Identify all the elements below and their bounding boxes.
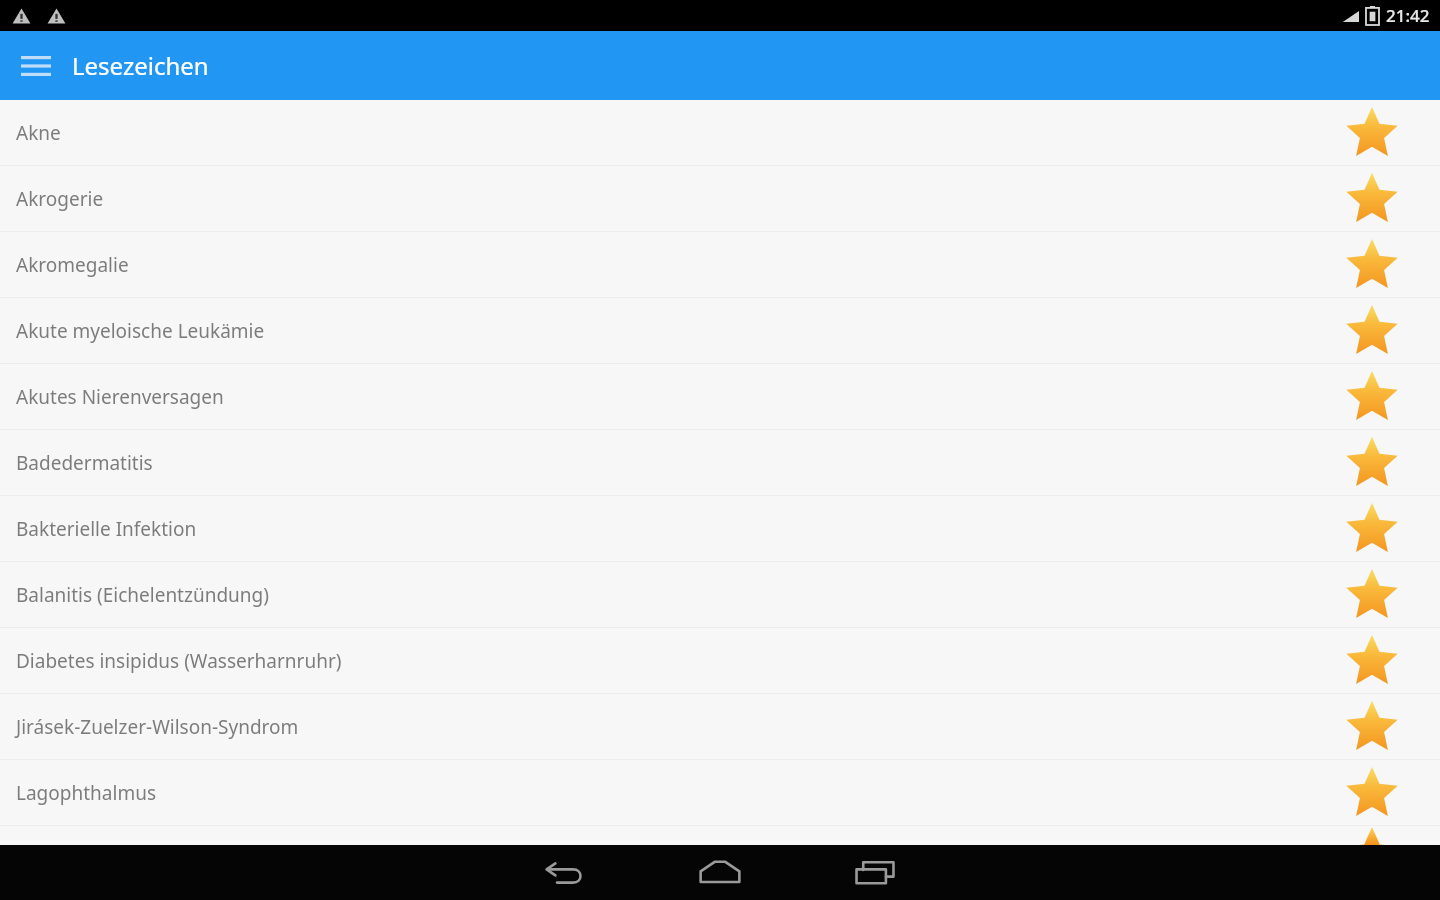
button[interactable]: Zurück [520, 845, 610, 900]
staticText: Bakterielle Infektion [16, 516, 197, 542]
button[interactable]: Akute myeloische Leukämie [0, 298, 1440, 363]
staticText: Diabetes insipidus (Wasserharnruhr) [16, 648, 342, 674]
other: Lesezeichen entfernen [1344, 765, 1400, 821]
button[interactable]: Startbildschirm [675, 845, 765, 900]
staticText: Akne [16, 120, 61, 146]
other: Lesezeichen entfernen [1344, 699, 1400, 755]
other: Lesezeichen entfernen [1344, 567, 1400, 623]
button[interactable] [0, 826, 1440, 845]
other: Lesezeichen entfernen [1344, 501, 1400, 557]
staticText: 21:42 [1386, 4, 1430, 27]
button[interactable]: Akromegalie [0, 232, 1440, 297]
button[interactable]: Lagophthalmus [0, 760, 1440, 825]
button[interactable]: Bakterielle Infektion [0, 496, 1440, 561]
staticText: Akute myeloische Leukämie [16, 318, 265, 344]
other: Lesezeichen entfernen [1344, 171, 1400, 227]
button[interactable]: Diabetes insipidus (Wasserharnruhr) [0, 628, 1440, 693]
button[interactable]: Badedermatitis [0, 430, 1440, 495]
other: Lesezeichen entfernen [1344, 237, 1400, 293]
staticText: Jirásek-Zuelzer-Wilson-Syndrom [16, 714, 299, 740]
staticText: Akrogerie [16, 186, 104, 212]
button[interactable]: Akutes Nierenversagen [0, 364, 1440, 429]
other: Lesezeichen entfernen [1344, 435, 1400, 491]
other: Lesezeichen entfernen [1344, 105, 1400, 161]
other: Lesezeichen entfernen [1344, 369, 1400, 425]
other: Lesezeichen entfernen [1344, 303, 1400, 359]
staticText: Lesezeichen [72, 49, 209, 82]
staticText: Akromegalie [16, 252, 129, 278]
staticText: Lagophthalmus [16, 780, 156, 806]
button[interactable]: Balanitis (Eichelentzündung) [0, 562, 1440, 627]
staticText: Akutes Nierenversagen [16, 384, 224, 410]
staticText: Badedermatitis [16, 450, 153, 476]
other: Lesezeichen entfernen [1344, 633, 1400, 689]
button[interactable]: Zuletzt verwendete Apps [830, 845, 920, 900]
staticText: Balanitis (Eichelentzündung) [16, 582, 269, 608]
button[interactable]: Akrogerie [0, 166, 1440, 231]
button[interactable]: Menü öffnen [12, 42, 60, 90]
button[interactable]: Akne [0, 100, 1440, 165]
button[interactable]: Jirásek-Zuelzer-Wilson-Syndrom [0, 694, 1440, 759]
